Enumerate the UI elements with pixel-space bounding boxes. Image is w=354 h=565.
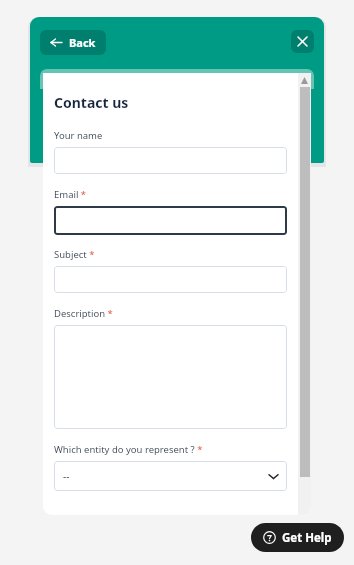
button[interactable]: Close [291,30,314,53]
button[interactable] [54,206,287,235]
button[interactable] [54,266,287,293]
button[interactable]: Which entity do you represent [54,461,287,491]
staticText: Your name [54,129,103,142]
staticText: Description * [54,307,113,320]
staticText: Contact us [54,93,129,112]
button[interactable] [54,147,287,174]
staticText: -- [63,469,70,483]
staticText: Back [69,35,96,50]
staticText: Subject * [54,248,95,261]
staticText: Get Help [282,530,332,546]
button[interactable]: Back [40,30,106,55]
staticText: Which entity do you represent ? * [54,443,203,456]
button[interactable]: Get Help [251,523,344,552]
button[interactable] [54,325,287,429]
staticText: Email * [54,188,87,201]
